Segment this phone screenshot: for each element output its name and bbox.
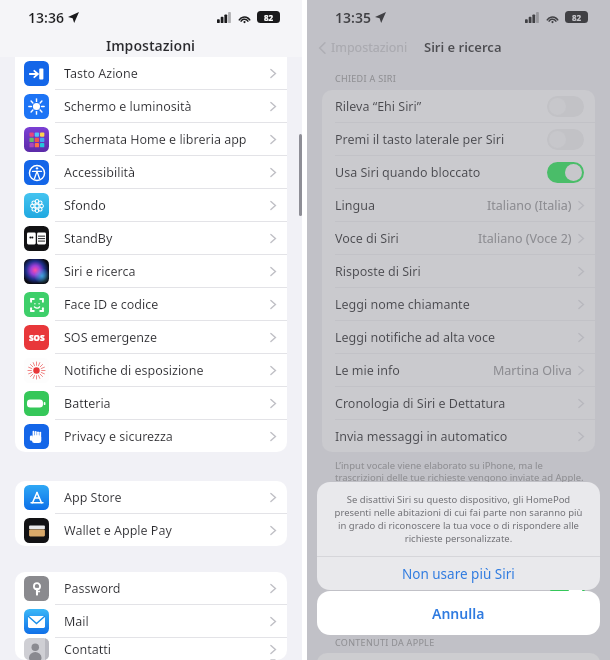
button[interactable]: Accessibilità xyxy=(15,155,287,188)
staticText: Face ID e codice xyxy=(64,296,159,313)
staticText: Lingua xyxy=(335,197,375,214)
button[interactable]: Le mie info xyxy=(322,353,595,386)
button[interactable]: Privacy e sicurezza xyxy=(15,419,287,452)
staticText: Cronologia di Siri e Dettatura xyxy=(335,395,506,412)
staticText: StandBy xyxy=(64,230,113,247)
button[interactable]: Premi il tasto laterale per Siri xyxy=(322,122,595,155)
staticText: Wallet e Apple Pay xyxy=(64,522,172,539)
staticText: Annulla xyxy=(432,604,485,623)
staticText: Privacy e sicurezza xyxy=(64,428,173,445)
staticText: Notifiche di esposizione xyxy=(64,362,204,379)
staticText: Invia messaggi in automatico xyxy=(335,428,508,445)
staticText: SOS emergenze xyxy=(64,329,157,346)
staticText: Italiano (Voce 2) xyxy=(478,230,572,247)
button[interactable]: Schermo e luminosità xyxy=(15,89,287,122)
staticText: App Store xyxy=(64,489,122,506)
staticText: Rileva “Ehi Siri” xyxy=(335,98,422,115)
staticText: Usa Siri quando bloccato xyxy=(335,164,481,181)
staticText: Contatti xyxy=(64,641,111,658)
button[interactable]: Invia messaggi in automatico xyxy=(322,419,595,452)
button[interactable]: App Store xyxy=(15,481,287,513)
staticText: Italiano (Italia) xyxy=(487,197,572,214)
button[interactable]: Annulla xyxy=(317,591,600,635)
staticText: Premi il tasto laterale per Siri xyxy=(335,131,505,148)
staticText: 82 xyxy=(264,12,274,23)
staticText: Voce di Siri xyxy=(335,230,399,247)
staticText: Leggi nome chiamante xyxy=(335,296,470,313)
button[interactable]: Wallet e Apple Pay xyxy=(15,513,287,546)
button[interactable]: Voce di Siri xyxy=(322,221,595,254)
button[interactable]: Tasto Azione xyxy=(15,57,287,89)
staticText: Leggi notifiche ad alta voce xyxy=(335,329,495,346)
staticText: Impostazioni xyxy=(106,36,196,55)
button[interactable]: Contatti xyxy=(15,637,287,660)
staticText: Tasto Azione xyxy=(64,65,138,82)
staticText: Sfondo xyxy=(64,197,106,214)
button[interactable]: Batteria xyxy=(15,386,287,419)
button[interactable]: Usa Siri quando bloccato xyxy=(547,162,584,183)
button[interactable]: Notifiche di esposizione xyxy=(15,353,287,386)
button[interactable]: Lingua xyxy=(322,188,595,221)
button[interactable]: Siri e ricerca xyxy=(15,254,287,287)
button[interactable]: Rileva “Ehi Siri” xyxy=(322,90,595,122)
staticText: Schermata Home e libreria app xyxy=(64,131,247,148)
staticText: Risposte di Siri xyxy=(335,263,421,280)
button[interactable]: Usa Siri quando bloccato xyxy=(322,155,595,188)
staticText: L’input vocale viene elaborato su iPhone… xyxy=(335,459,584,484)
staticText: Schermo e luminosità xyxy=(64,98,192,115)
button[interactable]: SOS xyxy=(15,320,287,353)
staticText: 13:36 xyxy=(28,8,64,27)
button[interactable]: Non usare più Siri xyxy=(317,557,600,590)
staticText: 82 xyxy=(572,12,582,23)
button[interactable]: StandBy xyxy=(15,221,287,254)
button[interactable]: Sfondo xyxy=(15,188,287,221)
button[interactable]: Mail xyxy=(15,604,287,637)
staticText: SOS xyxy=(29,332,45,343)
staticText: Password xyxy=(64,580,121,597)
button[interactable]: Risposte di Siri xyxy=(322,254,595,287)
button[interactable]: Back to Impostazioni xyxy=(317,36,410,59)
staticText: Martina Oliva xyxy=(493,362,572,379)
button[interactable]: Cronologia di Siri e Dettatura xyxy=(322,386,595,419)
staticText: Siri e ricerca xyxy=(64,263,136,280)
staticText: Non usare più Siri xyxy=(402,565,515,583)
staticText: Batteria xyxy=(64,395,111,412)
staticText: CONTENUTI DA APPLE xyxy=(335,636,435,648)
staticText: Le mie info xyxy=(335,362,400,379)
button[interactable]: Leggi notifiche ad alta voce xyxy=(322,320,595,353)
button[interactable]: Password xyxy=(15,572,287,604)
staticText: Accessibilità xyxy=(64,164,136,181)
staticText: Siri e ricerca xyxy=(424,38,502,56)
staticText: Impostazioni xyxy=(331,39,408,56)
staticText: Mail xyxy=(64,613,89,630)
button[interactable]: Face ID e codice xyxy=(15,287,287,320)
staticText: CHIEDI A SIRI xyxy=(335,72,397,84)
staticText: Se disattivi Siri su questo dispositivo,… xyxy=(331,493,586,545)
button[interactable]: Leggi nome chiamante xyxy=(322,287,595,320)
staticText: 13:35 xyxy=(335,8,371,27)
button[interactable]: Schermata Home e libreria app xyxy=(15,122,287,155)
